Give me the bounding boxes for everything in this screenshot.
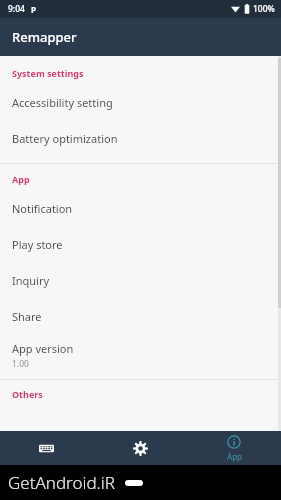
staticText: App xyxy=(12,173,30,185)
staticText: 1.00 xyxy=(12,358,29,370)
button[interactable]: Battery optimization xyxy=(0,120,281,156)
button[interactable]: Settings xyxy=(93,431,187,465)
staticText: Notification xyxy=(12,201,73,216)
button[interactable]: Notification xyxy=(0,190,281,226)
staticText: 9:04 xyxy=(8,3,25,15)
button[interactable]: Keyboard xyxy=(0,431,93,465)
staticText: GetAndroid.iR xyxy=(8,471,115,494)
staticText: App xyxy=(227,451,242,462)
button[interactable]: Play store xyxy=(0,226,281,262)
staticText: 100% xyxy=(253,3,275,15)
button[interactable]: App info xyxy=(187,431,281,465)
staticText: Inquiry xyxy=(12,273,50,288)
staticText: Battery optimization xyxy=(12,131,118,146)
staticText: Share xyxy=(12,309,42,324)
staticText: Play store xyxy=(12,237,63,252)
staticText: System settings xyxy=(12,67,84,79)
staticText: Others xyxy=(12,388,43,400)
staticText: Remapper xyxy=(12,28,77,46)
staticText: App version xyxy=(12,341,74,356)
staticText: Accessibility setting xyxy=(12,95,113,110)
button[interactable]: Accessibility setting xyxy=(0,84,281,120)
button[interactable]: App version xyxy=(0,334,281,376)
staticText: P xyxy=(31,4,36,15)
button[interactable]: Share xyxy=(0,298,281,334)
button[interactable]: Inquiry xyxy=(0,262,281,298)
